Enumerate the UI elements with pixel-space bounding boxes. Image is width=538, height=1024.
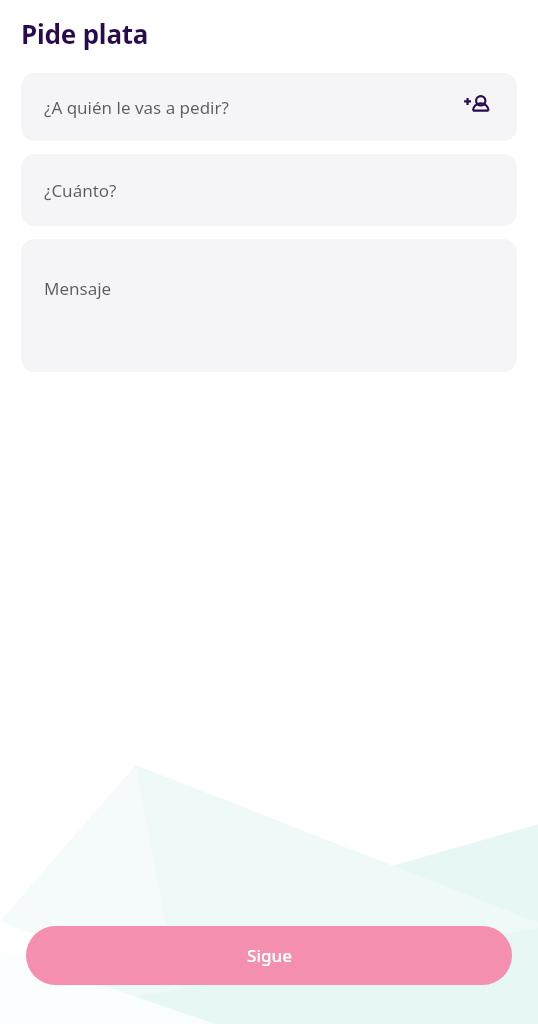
button[interactable]: Agregar contacto bbox=[460, 90, 494, 124]
staticText: Pide plata bbox=[21, 16, 149, 51]
staticText: ¿A quién le vas a pedir? bbox=[44, 96, 229, 119]
staticText: Sigue bbox=[247, 944, 292, 967]
button[interactable]: ¿Cuánto? bbox=[21, 154, 517, 226]
staticText: Mensaje bbox=[44, 277, 112, 300]
button[interactable]: ¿A quién le vas a pedir? bbox=[21, 73, 517, 141]
button[interactable]: Mensaje bbox=[21, 239, 517, 372]
staticText: ¿Cuánto? bbox=[44, 179, 117, 202]
button[interactable]: Sigue bbox=[26, 926, 512, 985]
